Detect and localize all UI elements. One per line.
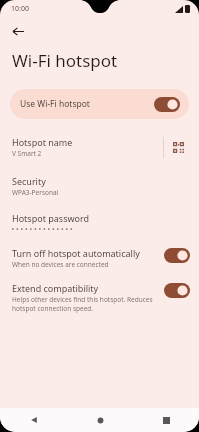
staticText: Helps other devices find this hotspot. R… [12, 295, 153, 304]
staticText: V Smart 2 [12, 149, 42, 158]
staticText: Turn off hotspot automatically [12, 247, 140, 259]
button[interactable]: Security [0, 175, 199, 197]
staticText: 10:00 [11, 4, 29, 14]
staticText: hotspot connection speed. [12, 304, 94, 313]
staticText: Extend compatibility [12, 282, 99, 294]
staticText: Hotspot name [12, 136, 73, 148]
button[interactable]: Share hotspot QR code [164, 134, 192, 160]
button[interactable]: Recent apps [133, 408, 199, 432]
button[interactable]: Home [67, 408, 133, 432]
button[interactable]: Back [5, 18, 31, 44]
staticText: When no devices are connected [12, 260, 109, 269]
button[interactable]: Turn off hotspot automatically [0, 247, 199, 269]
button[interactable]: Back [0, 408, 67, 432]
staticText: Use Wi-Fi hotspot [20, 98, 154, 110]
button[interactable]: Hotspot password [0, 212, 199, 231]
button[interactable]: Extend compatibility [0, 282, 199, 313]
staticText: Security [12, 175, 46, 187]
staticText: Hotspot password [12, 212, 90, 224]
button[interactable]: Use Wi-Fi hotspot [10, 89, 189, 119]
staticText: Wi-Fi hotspot [12, 49, 118, 72]
staticText: WPA3-Personal [12, 188, 59, 197]
button[interactable]: Hotspot name [0, 134, 199, 160]
